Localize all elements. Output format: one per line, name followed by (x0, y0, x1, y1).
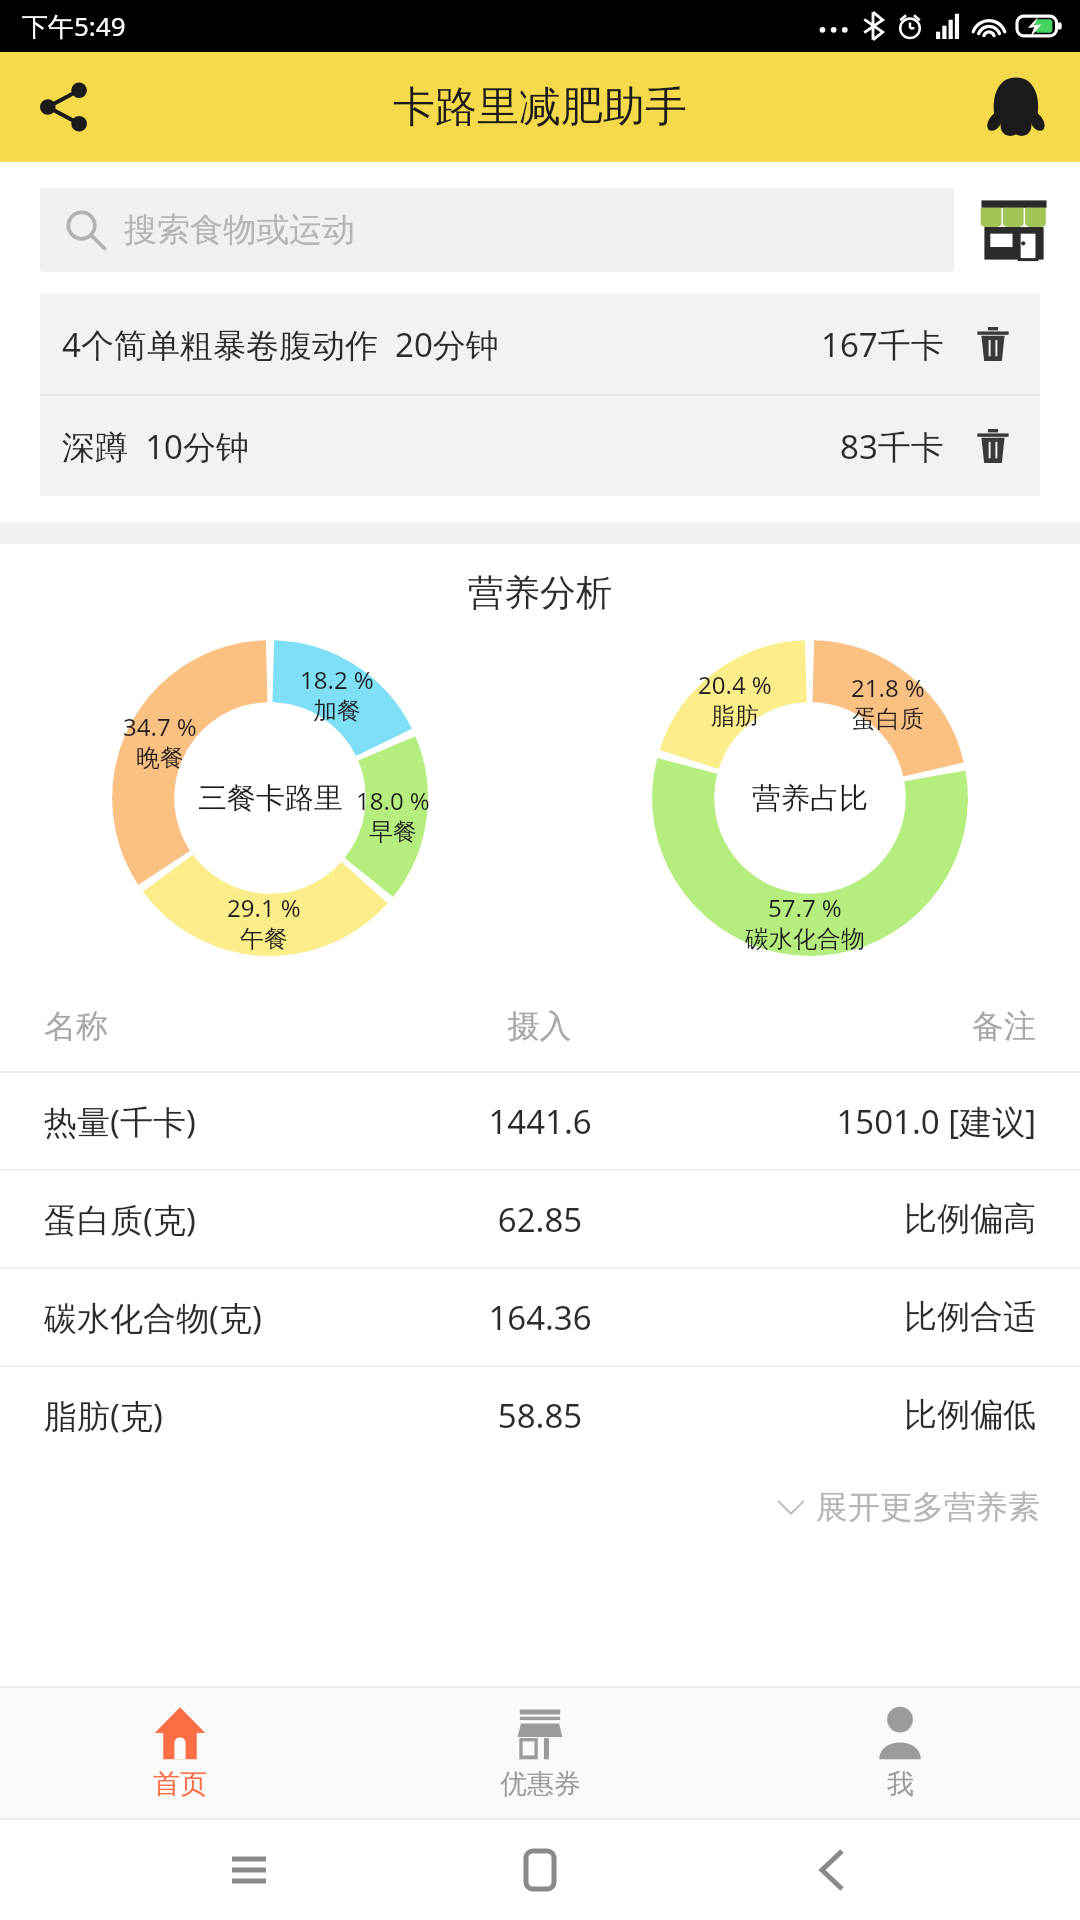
button[interactable]: QQ (974, 65, 1058, 149)
staticText: 下午5:49 (22, 8, 126, 44)
staticText: 优惠券 (500, 1767, 581, 1801)
staticText: 脂肪(克) (44, 1393, 396, 1438)
staticText: 20.4 % (698, 668, 772, 701)
button[interactable]: 我 (720, 1688, 1080, 1818)
staticText: 18.2 % (300, 663, 374, 696)
button[interactable]: 展开更多营养素 (0, 1463, 1080, 1551)
button[interactable]: 4个简单粗暴卷腹动作 20分钟 (40, 294, 1040, 394)
staticText: 4个简单粗暴卷腹动作 20分钟 (62, 322, 821, 367)
staticText: 比例合适 (684, 1296, 1036, 1338)
staticText: 营养占比 (752, 780, 868, 817)
button[interactable]: 首页 (0, 1688, 360, 1818)
staticText: 34.7 % (123, 710, 197, 743)
staticText: 加餐 (313, 696, 361, 726)
staticText: 29.1 % (227, 891, 301, 924)
staticText: 164.36 (396, 1295, 684, 1340)
staticText: 卡路里减肥助手 (393, 81, 687, 134)
staticText: 58.85 (396, 1393, 684, 1438)
staticText: 83千卡 (840, 424, 944, 469)
staticText: 首页 (153, 1767, 207, 1801)
staticText: 18.0 % (356, 784, 430, 817)
button[interactable]: Delete (966, 419, 1020, 473)
staticText: 营养分析 (0, 570, 1080, 615)
staticText: 深蹲 10分钟 (62, 424, 840, 469)
staticText: 62.85 (396, 1197, 684, 1242)
button[interactable]: Shop (968, 184, 1060, 276)
staticText: 热量(千卡) (44, 1099, 396, 1144)
staticText: 展开更多营养素 (816, 1487, 1040, 1527)
staticText: 名称 (44, 1006, 374, 1046)
staticText: 三餐卡路里 (198, 780, 343, 817)
staticText: 备注 (705, 1006, 1036, 1046)
button[interactable]: 搜索食物或运动 (40, 188, 954, 272)
button[interactable]: 深蹲 10分钟 (40, 396, 1040, 496)
staticText: 摄入 (374, 1006, 705, 1046)
staticText: 167千卡 (821, 322, 944, 367)
staticText: 1501.0 [建议] (684, 1099, 1036, 1144)
staticText: 我 (887, 1767, 914, 1801)
staticText: 1441.6 (396, 1099, 684, 1144)
staticText: 21.8 % (851, 671, 925, 704)
button[interactable]: 脂肪(克) (0, 1367, 1080, 1463)
button[interactable]: 蛋白质(克) (0, 1171, 1080, 1267)
staticText: 脂肪 (711, 701, 759, 731)
button[interactable]: Share (24, 67, 104, 147)
staticText: 57.7 % (768, 891, 842, 924)
staticText: 早餐 (369, 817, 417, 847)
button[interactable]: Recents (206, 1827, 292, 1913)
staticText: 比例偏低 (684, 1394, 1036, 1436)
button[interactable]: Home (497, 1827, 583, 1913)
staticText: 碳水化合物(克) (44, 1295, 396, 1340)
staticText: 碳水化合物 (745, 924, 865, 954)
staticText: 搜索食物或运动 (124, 209, 355, 251)
staticText: 午餐 (240, 924, 288, 954)
button[interactable]: 优惠券 (360, 1688, 720, 1818)
staticText: 比例偏高 (684, 1198, 1036, 1240)
button[interactable]: Delete (966, 317, 1020, 371)
staticText: 蛋白质 (852, 704, 924, 734)
staticText: 蛋白质(克) (44, 1197, 396, 1242)
button[interactable]: 碳水化合物(克) (0, 1269, 1080, 1365)
button[interactable]: 热量(千卡) (0, 1073, 1080, 1169)
button[interactable]: Back (789, 1827, 875, 1913)
staticText: 晚餐 (136, 743, 184, 773)
